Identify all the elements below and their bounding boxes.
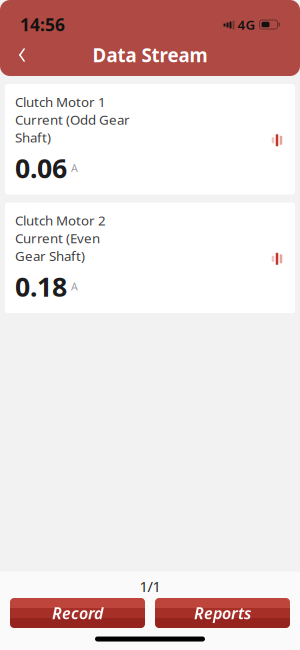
staticText: Clutch Motor 1 Current (Odd Gear Shaft) xyxy=(15,93,130,146)
staticText: Data Stream xyxy=(92,43,207,67)
button[interactable]: Record xyxy=(10,598,145,628)
staticText: 1/1 xyxy=(139,576,160,596)
button[interactable]: Back xyxy=(6,39,38,71)
staticText: A xyxy=(71,161,78,175)
staticText: 4G xyxy=(237,16,255,33)
staticText: Record xyxy=(52,602,103,624)
staticText: 14:56 xyxy=(20,13,65,36)
staticText: Reports xyxy=(194,602,251,624)
button[interactable]: Reports xyxy=(155,598,290,628)
staticText: Clutch Motor 2 Current (Even Gear Shaft) xyxy=(15,211,106,265)
staticText: 0.06 xyxy=(15,150,67,185)
staticText: 0.18 xyxy=(15,269,67,304)
staticText: A xyxy=(71,279,78,293)
